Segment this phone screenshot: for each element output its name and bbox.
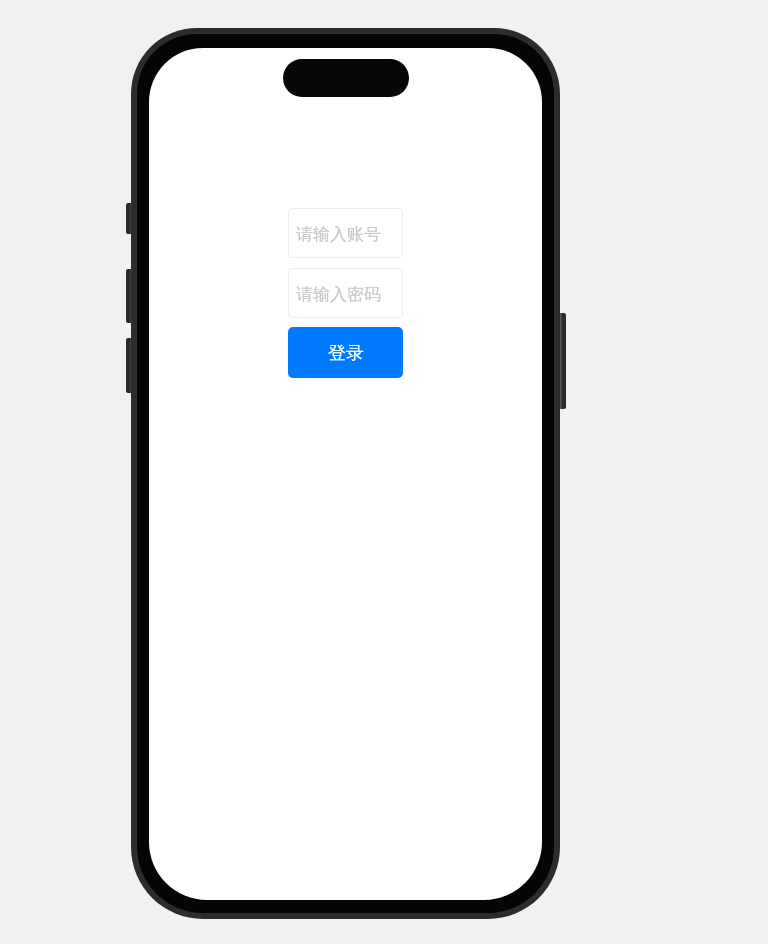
button[interactable]: 登录 [288, 327, 403, 378]
staticText: 请输入密码 [296, 284, 381, 305]
button[interactable]: Volume up [126, 269, 132, 323]
button[interactable]: Power [560, 313, 566, 409]
button[interactable]: Volume down [126, 338, 132, 393]
button[interactable]: 请输入账号 [288, 208, 403, 258]
button[interactable]: Silent switch [126, 203, 132, 234]
staticText: 登录 [328, 342, 364, 365]
button[interactable]: 请输入密码 [288, 268, 403, 318]
staticText: 请输入账号 [296, 224, 381, 245]
